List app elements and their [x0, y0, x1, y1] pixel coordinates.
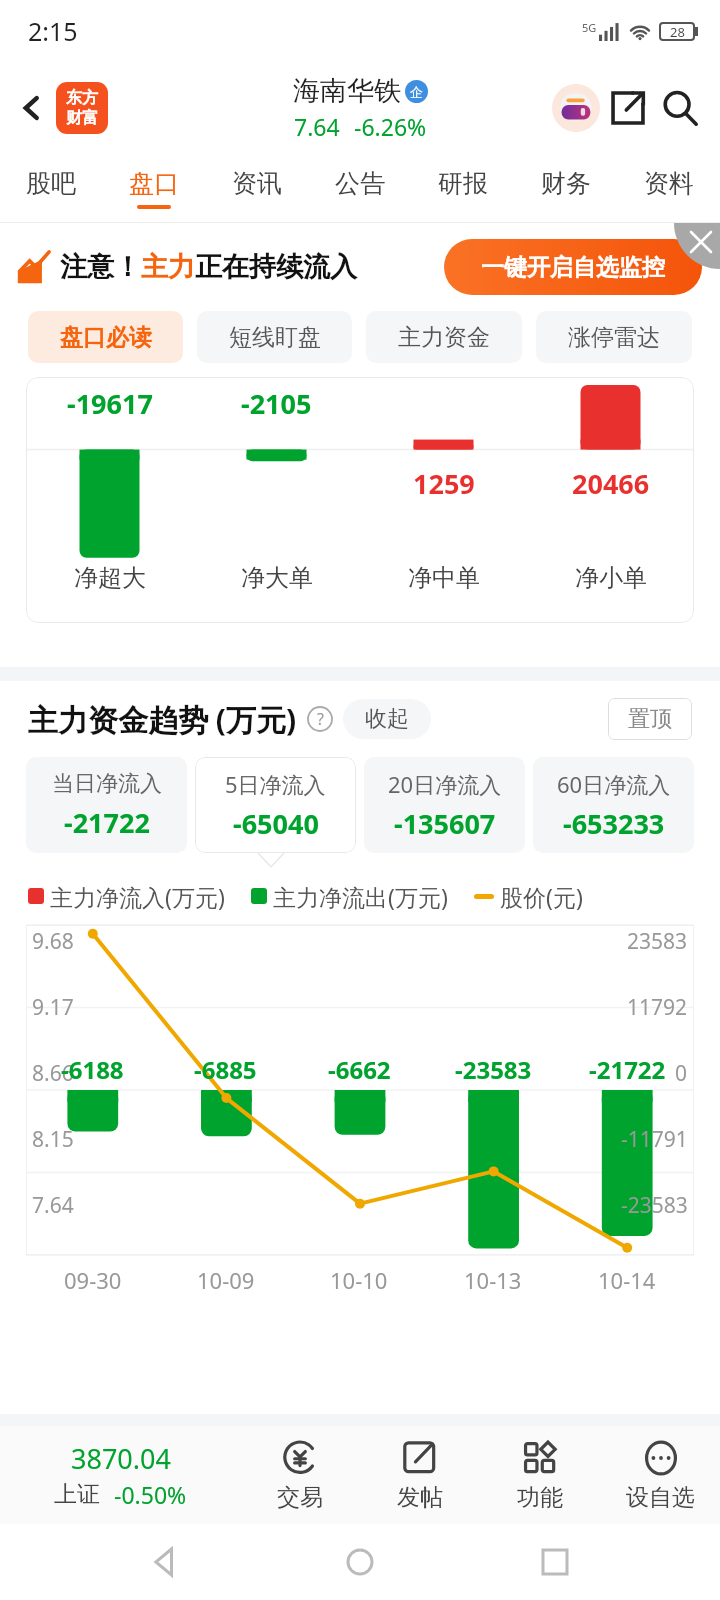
staticText: 8.15 [32, 1125, 74, 1154]
button[interactable]: 研报 [411, 154, 514, 222]
staticText: 财务 [541, 168, 591, 199]
staticText: 资讯 [232, 168, 282, 199]
staticText: -21722 [589, 1053, 666, 1086]
button[interactable]: 最近任务 [525, 1532, 585, 1592]
staticText: 0 [675, 1059, 688, 1088]
button[interactable]: 设自选 [600, 1426, 720, 1524]
staticText: -23583 [621, 1191, 688, 1220]
staticText: -6885 [194, 1053, 257, 1086]
button[interactable]: 60日净流入 [533, 757, 694, 853]
staticText: 注意！ [60, 250, 141, 284]
button[interactable]: 东方财富 [56, 82, 108, 134]
staticText: 10-09 [197, 1265, 255, 1295]
staticText: 5G [582, 20, 597, 35]
button[interactable]: 功能 [480, 1426, 600, 1524]
staticText: 3870.04 [71, 1440, 171, 1477]
staticText: 09-30 [64, 1265, 122, 1295]
staticText: 60日净流入 [557, 769, 671, 799]
staticText: 东方 [66, 88, 98, 108]
button[interactable]: 分享 [602, 82, 654, 134]
button[interactable]: 交易 [240, 1426, 360, 1524]
staticText: -11791 [621, 1125, 688, 1154]
staticText: 10-10 [330, 1265, 388, 1295]
staticText: 置顶 [628, 705, 672, 733]
staticText: 净大单 [241, 563, 313, 593]
staticText: 1259 [413, 465, 475, 502]
button[interactable]: 3870.04 [0, 1426, 240, 1524]
button[interactable]: 短线盯盘 [197, 311, 352, 363]
staticText: 资料 [644, 168, 694, 199]
staticText: 7.64 [32, 1191, 74, 1220]
staticText: 研报 [438, 168, 488, 199]
staticText: 20466 [572, 465, 650, 502]
button[interactable]: 收起 [343, 699, 431, 739]
staticText: 5日净流入 [225, 769, 326, 799]
staticText: 当日净流入 [52, 770, 162, 798]
staticText: 盘口 [129, 168, 179, 199]
staticText: 10-14 [598, 1265, 656, 1295]
staticText: 设自选 [626, 1483, 695, 1512]
staticText: -6662 [328, 1053, 391, 1086]
button[interactable]: 股吧 [0, 154, 102, 222]
button[interactable]: 资讯 [205, 154, 308, 222]
staticText: 一键开启自选监控 [481, 253, 665, 282]
staticText: 收起 [365, 705, 409, 733]
button[interactable]: 主页 [330, 1532, 390, 1592]
staticText: ? [317, 708, 324, 730]
staticText: 净超大 [74, 563, 146, 593]
staticText: 主力净流入(万元) [50, 881, 225, 912]
button[interactable]: 返回 [135, 1532, 195, 1592]
staticText: 功能 [517, 1483, 563, 1512]
staticText: -23583 [455, 1053, 532, 1086]
button[interactable]: 盘口 [102, 154, 205, 222]
staticText: 7.64 [294, 111, 340, 142]
button[interactable]: 财务 [514, 154, 617, 222]
button[interactable]: 说明 [307, 706, 333, 732]
staticText: 23583 [627, 927, 688, 956]
staticText: 股价(元) [500, 881, 583, 912]
staticText: 股吧 [26, 168, 76, 199]
staticText: -6188 [61, 1053, 124, 1086]
staticText: 主力资金 [398, 323, 490, 352]
button[interactable]: 一键开启自选监控 [444, 239, 702, 295]
button[interactable]: 20日净流入 [364, 757, 525, 853]
staticText: 企 [410, 84, 423, 100]
staticText: 9.17 [32, 993, 74, 1022]
staticText: 20日净流入 [388, 769, 502, 799]
staticText: -653233 [563, 805, 665, 842]
button[interactable]: 当日净流入 [26, 757, 187, 853]
button[interactable]: 发帖 [360, 1426, 480, 1524]
button[interactable]: 资料 [617, 154, 720, 222]
staticText: -65040 [233, 805, 319, 842]
button[interactable]: 涨停雷达 [536, 311, 692, 363]
staticText: -19617 [67, 385, 153, 422]
staticText: 上证 [54, 1480, 100, 1509]
staticText: -0.50% [114, 1479, 187, 1510]
button[interactable]: 智能助手 [550, 82, 602, 134]
staticText: 主力 [141, 250, 195, 284]
staticText: 正在持续流入 [195, 250, 357, 284]
staticText: 9.68 [32, 927, 74, 956]
staticText: 交易 [277, 1483, 323, 1512]
staticText: 28 [670, 23, 685, 41]
button[interactable]: 搜索 [654, 82, 706, 134]
button[interactable]: -19617 [26, 377, 694, 623]
button[interactable]: 关闭 [674, 223, 720, 269]
button[interactable]: 置顶 [608, 698, 692, 740]
staticText: 涨停雷达 [568, 323, 660, 352]
staticText: -21722 [64, 804, 150, 841]
button[interactable]: 盘口必读 [28, 311, 183, 363]
staticText: -135607 [394, 805, 496, 842]
staticText: 主力净流出(万元) [273, 881, 448, 912]
staticText: 10-13 [464, 1265, 522, 1295]
button[interactable]: 公告 [308, 154, 411, 222]
button[interactable]: 主力资金 [366, 311, 522, 363]
staticText: 公告 [335, 168, 385, 199]
staticText: 净小单 [575, 563, 647, 593]
button[interactable]: 返回 [10, 86, 54, 130]
staticText: 净中单 [408, 563, 480, 593]
staticText: 主力资金趋势 (万元) [28, 699, 297, 740]
button[interactable]: 5日净流入 [195, 757, 356, 853]
staticText: -6.26% [354, 111, 427, 142]
staticText: 11792 [627, 993, 688, 1022]
